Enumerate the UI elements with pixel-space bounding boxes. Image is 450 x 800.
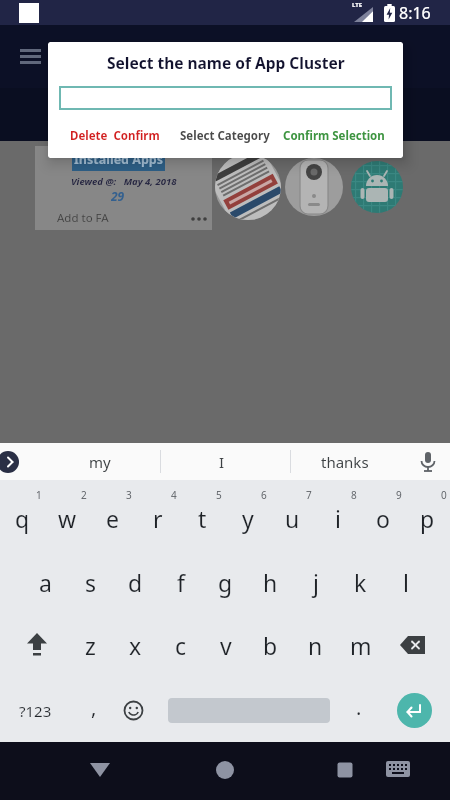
button[interactable]: f [158, 555, 203, 609]
button[interactable]: r [135, 491, 180, 545]
staticText: j [313, 567, 319, 598]
staticText: k [354, 567, 367, 598]
staticText: 2 [81, 488, 87, 502]
button[interactable]: Confirm Selection [245, 126, 385, 146]
staticText: h [263, 567, 278, 598]
staticText: b [263, 630, 278, 661]
button[interactable] [59, 86, 392, 110]
button[interactable] [213, 758, 237, 782]
staticText: 6 [261, 488, 267, 502]
button[interactable]: n [293, 618, 338, 672]
button[interactable]: p [405, 491, 450, 545]
button[interactable]: w [45, 491, 90, 545]
staticText: u [285, 503, 300, 534]
button[interactable]: u [270, 491, 315, 545]
button[interactable]: c [158, 618, 203, 672]
staticText: 0 [441, 488, 447, 502]
button[interactable]: y [225, 491, 270, 545]
button[interactable]: s [68, 555, 113, 609]
button[interactable] [0, 451, 19, 473]
button[interactable] [123, 700, 144, 721]
staticText: l [403, 567, 409, 598]
staticText: Viewed @: May 4, 2018 [71, 175, 177, 188]
button[interactable] [18, 46, 43, 66]
staticText: g [218, 567, 233, 598]
staticText: Confirm Selection [283, 128, 385, 144]
staticText: r [153, 503, 163, 534]
button[interactable]: k [338, 555, 383, 609]
button[interactable]: m [338, 618, 383, 672]
staticText: I [219, 452, 225, 472]
button[interactable]: g [203, 555, 248, 609]
staticText: z [85, 630, 96, 661]
button[interactable]: q [0, 491, 45, 545]
button[interactable]: e [90, 491, 135, 545]
button[interactable]: ?123 [8, 684, 63, 738]
staticText: . [356, 694, 362, 721]
staticText: ?123 [19, 701, 52, 721]
staticText: 3 [126, 488, 132, 502]
staticText: y [242, 503, 254, 534]
staticText: v [220, 630, 232, 661]
staticText: 1 [36, 488, 42, 502]
staticText: my [89, 452, 111, 472]
button[interactable]: i [315, 491, 360, 545]
button[interactable]: l [383, 555, 428, 609]
button[interactable]: x [113, 618, 158, 672]
button[interactable]: . [336, 680, 381, 734]
staticText: o [376, 503, 390, 534]
staticText: i [335, 503, 341, 534]
button[interactable]: , [71, 680, 116, 734]
staticText: Delete Confirm [70, 128, 160, 144]
button[interactable]: Select Category [155, 126, 295, 146]
staticText: f [177, 567, 185, 598]
button[interactable] [416, 450, 440, 474]
staticText: p [420, 503, 435, 534]
button[interactable]: v [203, 618, 248, 672]
button[interactable]: I [177, 443, 267, 480]
staticText: w [58, 503, 77, 534]
staticText: Installed Apps [74, 151, 163, 168]
staticText: 8:16 [399, 2, 431, 24]
button[interactable] [397, 693, 432, 728]
staticText: e [106, 503, 119, 534]
staticText: Add to FA [57, 210, 109, 226]
staticText: 8 [351, 488, 357, 502]
button[interactable] [88, 760, 112, 780]
staticText: x [129, 630, 142, 661]
button[interactable]: o [360, 491, 405, 545]
button[interactable]: h [248, 555, 293, 609]
staticText: Select the name of App Cluster [107, 52, 345, 72]
staticText: 4 [171, 488, 177, 502]
staticText: 7 [306, 488, 312, 502]
staticText: 5 [216, 488, 222, 502]
staticText: c [175, 630, 187, 661]
staticText: n [308, 630, 323, 661]
button[interactable]: Delete Confirm [70, 126, 210, 146]
staticText: s [85, 567, 97, 598]
button[interactable]: a [23, 555, 68, 609]
button[interactable] [23, 631, 51, 659]
button[interactable]: thanks [300, 443, 390, 480]
button[interactable] [399, 634, 429, 656]
staticText: thanks [321, 452, 369, 472]
staticText: 29 [111, 188, 125, 203]
staticText: a [39, 567, 52, 598]
button[interactable]: z [68, 618, 113, 672]
button[interactable] [333, 758, 357, 782]
button[interactable]: my [55, 443, 145, 480]
button[interactable]: d [113, 555, 158, 609]
button[interactable]: t [180, 491, 225, 545]
button[interactable] [384, 759, 412, 783]
staticText: 9 [396, 488, 402, 502]
staticText: , [91, 694, 97, 721]
staticText: q [15, 503, 30, 534]
button[interactable]: b [248, 618, 293, 672]
staticText: t [198, 503, 207, 534]
button[interactable]: j [293, 555, 338, 609]
staticText: d [128, 567, 143, 598]
staticText: LTE [352, 1, 363, 9]
staticText: Select Category [180, 128, 270, 144]
staticText: m [350, 630, 372, 661]
